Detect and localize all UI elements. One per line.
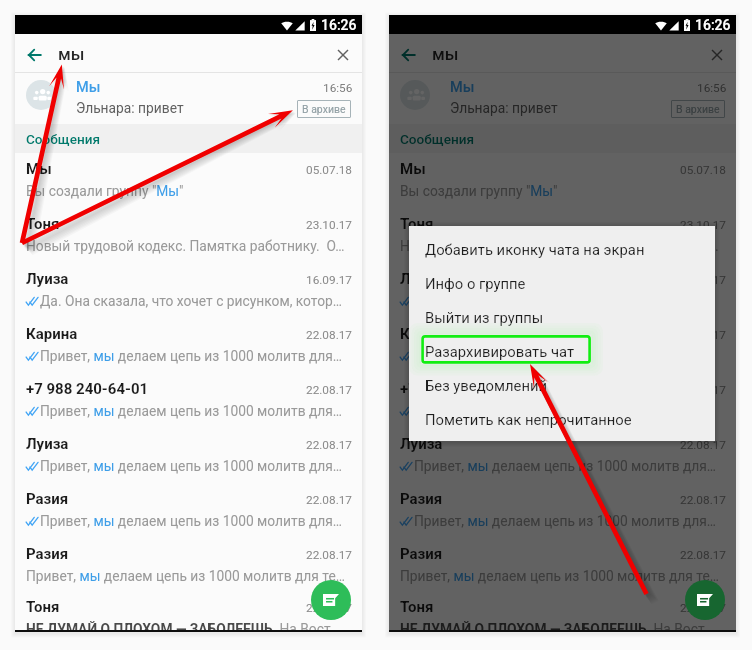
staticText: 22.08.17 [306, 548, 353, 562]
staticText: мы [58, 44, 85, 64]
staticText: Тоня [400, 598, 434, 616]
staticText: Привет, мы делаем цепь из 1000 молитв дл… [414, 513, 717, 529]
staticText: Разия [400, 490, 443, 508]
staticText: Пометить как непрочитанное [425, 411, 632, 428]
staticText: Тоня [400, 215, 434, 233]
staticText: Привет, мы делаем цепь из 1000 молитв дл… [40, 403, 343, 419]
button[interactable]: Выйти из группы [409, 300, 715, 334]
button[interactable]: +7 988 240-64-01 [389, 373, 736, 428]
staticText: +7 988 240-64-01 [400, 380, 523, 398]
button[interactable]: Тоня [389, 208, 736, 263]
staticText: НЕ ДУМАЙ О ПЛОХОМ — ЗАБОЛЕЕШЬ На Вост… [26, 621, 340, 632]
button[interactable]: Тоня [15, 208, 362, 263]
button[interactable]: Луиза [15, 428, 362, 483]
button[interactable]: Карина [15, 318, 362, 373]
staticText: Эльнара: привет [450, 100, 558, 116]
staticText: Мы [76, 79, 101, 96]
button[interactable]: Разия [15, 483, 362, 538]
staticText: Инфо о группе [425, 275, 526, 292]
staticText: Луиза [400, 270, 443, 288]
button[interactable]: Close [330, 42, 356, 68]
button[interactable]: +7 988 240-64-01 [15, 373, 362, 428]
button[interactable]: Луиза [15, 263, 362, 318]
button[interactable]: New message [311, 580, 351, 620]
staticText: 16:56 [697, 81, 727, 95]
staticText: +7 988 240-64-01 [26, 380, 149, 398]
button[interactable]: Пометить как непрочитанное [409, 402, 715, 436]
staticText: 16.09.17 [306, 273, 353, 287]
staticText: Привет, мы делаем цепь из 1000 молитв дл… [414, 348, 717, 364]
staticText: Мы [26, 160, 52, 178]
staticText: Привет, мы делаем цепь из 1000 молитв дл… [400, 568, 719, 584]
button[interactable]: Луиза [389, 263, 736, 318]
staticText: 22.08.17 [680, 438, 727, 452]
button[interactable]: Инфо о группе [409, 266, 715, 300]
staticText: Тоня [26, 215, 60, 233]
staticText: В архиве [302, 103, 346, 115]
staticText: Привет, мы делаем цепь из 1000 молитв дл… [26, 568, 345, 584]
button[interactable]: Карина [389, 318, 736, 373]
staticText: Новый трудовой кодекс. Памятка работнику… [26, 238, 345, 254]
staticText: Привет, мы делаем цепь из 1000 молитв дл… [414, 458, 717, 474]
staticText: Луиза [26, 435, 69, 453]
staticText: 22.08.17 [680, 383, 727, 397]
button[interactable]: Мы [389, 73, 736, 124]
staticText: Добавить иконку чата на экран [425, 241, 645, 258]
staticText: Сообщения [26, 131, 100, 147]
staticText: Мы [400, 160, 426, 178]
staticText: 16:56 [323, 81, 353, 95]
button[interactable]: Мы [389, 153, 736, 208]
staticText: 05.07.18 [306, 163, 353, 177]
staticText: 05.07.18 [680, 163, 727, 177]
staticText: 22.08.17 [680, 601, 727, 615]
staticText: Карина [400, 325, 452, 343]
button[interactable]: Разархивировать чат [409, 334, 715, 368]
staticText: Привет, мы делаем цепь из 1000 молитв дл… [40, 513, 343, 529]
staticText: Луиза [26, 270, 69, 288]
button[interactable]: Разия [389, 483, 736, 538]
staticText: Вы создали группу "Мы" [400, 183, 558, 199]
button[interactable]: Close [704, 42, 730, 68]
button[interactable]: Back [395, 42, 421, 68]
button[interactable]: Мы [15, 153, 362, 208]
staticText: Луиза [400, 435, 443, 453]
staticText: Новый трудовой кодекс. Памятка работнику… [400, 238, 719, 254]
staticText: 22.08.17 [306, 328, 353, 342]
staticText: 22.08.17 [306, 493, 353, 507]
staticText: НЕ ДУМАЙ О ПЛОХОМ — ЗАБОЛЕЕШЬ На Вост… [400, 621, 714, 632]
staticText: 16:26 [695, 17, 731, 33]
staticText: 22.08.17 [306, 438, 353, 452]
staticText: Эльнара: привет [76, 100, 184, 116]
button[interactable]: Тоня [15, 593, 362, 632]
button[interactable]: New message [685, 580, 725, 620]
staticText: Да. Она сказала, что хочет с рисунком, к… [414, 293, 717, 309]
staticText: 22.08.17 [306, 601, 353, 615]
staticText: 23.10.17 [306, 218, 353, 232]
staticText: Привет, мы делаем цепь из 1000 молитв дл… [40, 348, 343, 364]
button[interactable]: Луиза [389, 428, 736, 483]
button[interactable]: Разия [389, 538, 736, 593]
staticText: 22.08.17 [680, 493, 727, 507]
staticText: Тоня [26, 598, 60, 616]
button[interactable]: Без уведомлений [409, 368, 715, 402]
staticText: Разия [26, 490, 69, 508]
staticText: 23.10.17 [680, 218, 727, 232]
staticText: Без уведомлений [425, 377, 548, 394]
staticText: Сообщения [400, 131, 474, 147]
staticText: Разия [400, 545, 443, 563]
staticText: мы [432, 44, 459, 64]
staticText: Вы создали группу "Мы" [26, 183, 184, 199]
button[interactable]: Добавить иконку чата на экран [409, 232, 715, 266]
staticText: 16.09.17 [680, 273, 727, 287]
button[interactable]: Разия [15, 538, 362, 593]
button[interactable]: Мы [15, 73, 362, 124]
staticText: Мы [450, 79, 475, 96]
button[interactable]: Тоня [389, 593, 736, 632]
staticText: Привет, мы делаем цепь из 1000 молитв дл… [40, 458, 343, 474]
staticText: Да. Она сказала, что хочет с рисунком, к… [40, 293, 343, 309]
staticText: Карина [26, 325, 78, 343]
staticText: Привет, мы делаем цепь из 1000 молитв дл… [414, 403, 717, 419]
staticText: 22.08.17 [680, 548, 727, 562]
button[interactable]: Back [21, 42, 47, 68]
staticText: 22.08.17 [680, 328, 727, 342]
